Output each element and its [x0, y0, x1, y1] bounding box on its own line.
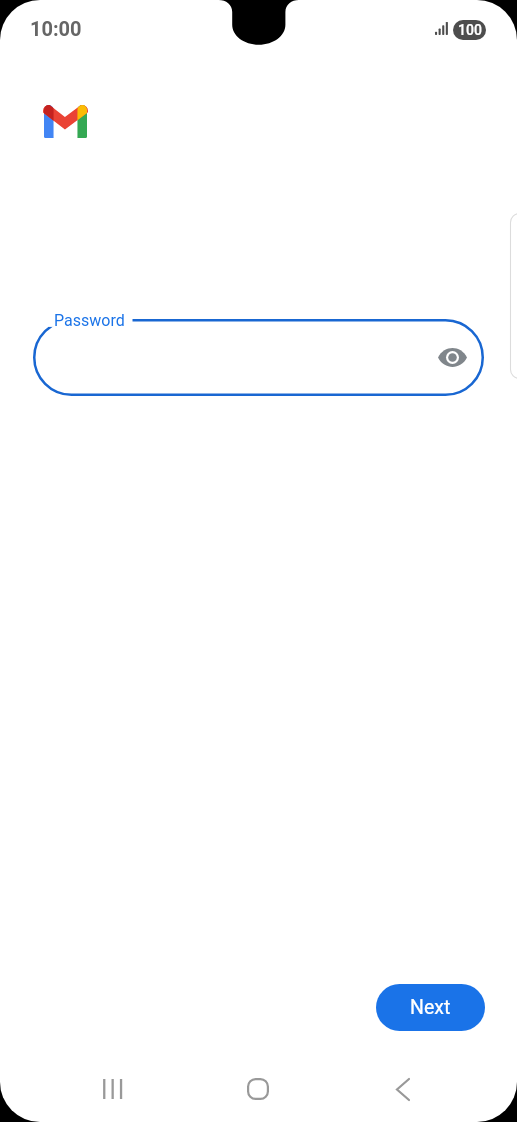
button[interactable]: Next — [376, 984, 485, 1031]
staticText: Password — [54, 311, 125, 330]
staticText: 100 — [458, 22, 482, 38]
button[interactable]: Home — [210, 1059, 306, 1119]
button[interactable]: Show password — [428, 333, 476, 381]
staticText: Next — [410, 996, 451, 1019]
button[interactable] — [33, 319, 484, 396]
button[interactable]: Back — [355, 1059, 451, 1119]
staticText: 10:00 — [30, 17, 82, 40]
button[interactable]: Recent apps — [65, 1059, 161, 1119]
